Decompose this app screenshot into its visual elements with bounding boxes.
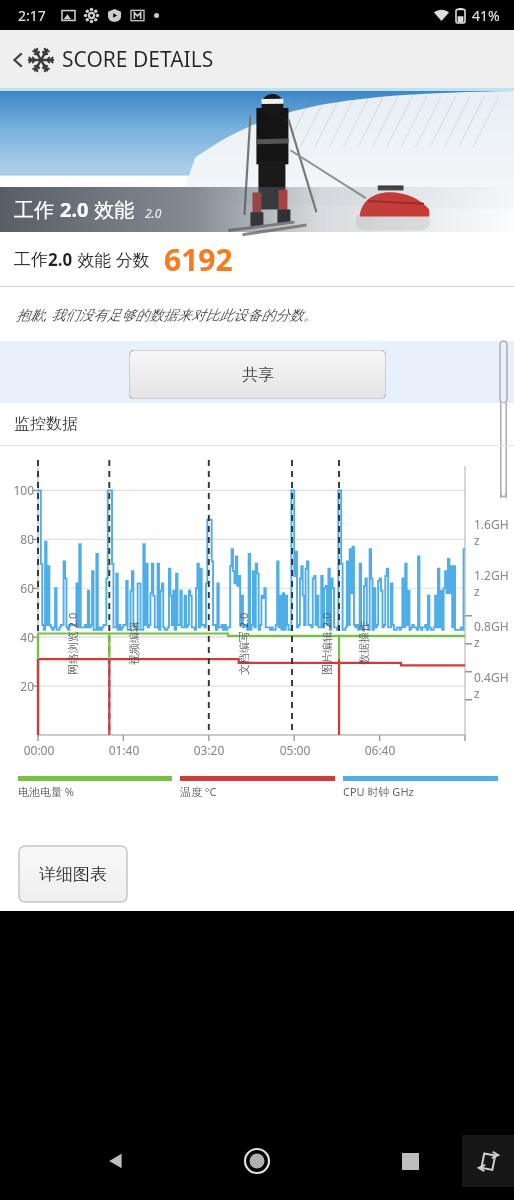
- staticText: 效能: [89, 196, 135, 223]
- staticText: 2:17: [18, 6, 46, 25]
- button[interactable]: Back: [0, 45, 218, 74]
- staticText: SCORE DETAILS: [62, 45, 214, 74]
- staticText: CPU 时钟 GHz: [343, 784, 414, 799]
- staticText: 01:40: [103, 742, 145, 758]
- staticText: 03:20: [188, 742, 230, 758]
- staticText: 00:00: [18, 742, 60, 758]
- staticText: 2.0: [48, 248, 73, 271]
- staticText: 20: [0, 678, 34, 694]
- staticText: 共享: [242, 365, 274, 385]
- button[interactable]: 详细图表: [19, 846, 127, 902]
- staticText: 2.0: [145, 205, 162, 221]
- button[interactable]: Recents: [388, 1139, 432, 1183]
- staticText: 文档编写 2.0: [236, 612, 251, 675]
- button[interactable]: 共享: [129, 350, 386, 399]
- staticText: 网络浏览 2.0: [65, 612, 80, 675]
- staticText: 05:00: [274, 742, 316, 758]
- staticText: 100: [0, 482, 34, 498]
- staticText: 1.2GHz: [474, 567, 514, 599]
- staticText: 工作: [14, 196, 60, 223]
- other: Back: [10, 52, 26, 68]
- staticText: 1.6GHz: [474, 516, 514, 548]
- staticText: 温度 °C: [180, 784, 217, 799]
- staticText: 视频编辑: [127, 621, 141, 665]
- staticText: 2.0: [60, 196, 89, 223]
- staticText: 40: [0, 629, 34, 645]
- staticText: 电池电量 %: [18, 784, 75, 799]
- staticText: 0.4GHz: [474, 669, 514, 701]
- button[interactable]: Back: [94, 1139, 138, 1183]
- staticText: 详细图表: [39, 864, 107, 885]
- staticText: 数据操作: [357, 621, 371, 665]
- staticText: 工作: [14, 249, 48, 270]
- staticText: 图片编辑 2.0: [319, 612, 334, 675]
- staticText: 41%: [472, 6, 500, 25]
- staticText: 80: [0, 531, 34, 547]
- staticText: 监控数据: [14, 414, 78, 434]
- button[interactable]: Rotate screen: [462, 1135, 514, 1187]
- staticText: 0.8GHz: [474, 618, 514, 650]
- staticText: 6192: [164, 239, 233, 280]
- staticText: 06:40: [359, 742, 401, 758]
- staticText: 60: [0, 580, 34, 596]
- staticText: 效能 分数: [73, 248, 150, 271]
- button[interactable]: Home: [235, 1139, 279, 1183]
- staticText: 抱歉, 我们没有足够的数据来对比此设备的分数。: [16, 305, 318, 324]
